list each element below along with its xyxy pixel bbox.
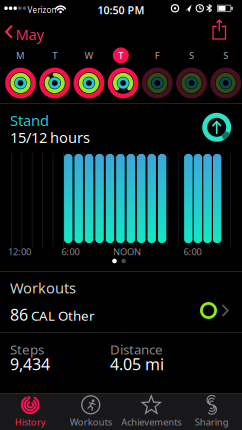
button[interactable]: Day W <box>72 47 106 99</box>
staticText: Distance <box>110 340 163 358</box>
staticText: Verizon <box>27 5 56 15</box>
staticText: 6:00 <box>61 245 79 258</box>
staticText: 15/12 <box>10 127 47 147</box>
staticText: T <box>118 49 123 62</box>
staticText: Workouts <box>70 416 112 428</box>
staticText: Steps <box>10 340 44 358</box>
staticText: Sharing <box>195 416 229 428</box>
staticText: Workouts <box>10 278 76 297</box>
staticText: S <box>223 49 228 62</box>
button[interactable]: Achievements <box>121 393 181 430</box>
button[interactable]: History <box>0 393 60 430</box>
staticText: 6:00 <box>183 245 201 258</box>
staticText: F <box>155 49 160 62</box>
button[interactable]: Back <box>3 20 49 44</box>
button[interactable]: Sharing <box>181 393 242 430</box>
staticText: Achievements <box>121 416 181 428</box>
button[interactable]: Workouts <box>60 393 121 430</box>
staticText: Stand <box>10 110 49 130</box>
button[interactable]: Day T <box>104 47 138 99</box>
button[interactable]: Share <box>206 18 232 42</box>
staticText: W <box>84 49 93 62</box>
staticText: 4.05 mi <box>110 353 164 375</box>
staticText: hours <box>50 127 90 147</box>
button[interactable]: 86 <box>0 292 242 332</box>
staticText: May <box>15 24 43 44</box>
staticText: 10:50 PM <box>97 3 144 17</box>
staticText: History <box>15 416 46 428</box>
staticText: S <box>189 49 194 62</box>
staticText: NOON <box>113 245 141 258</box>
staticText: T <box>52 49 57 62</box>
staticText: 86 <box>10 304 28 325</box>
button[interactable]: Day M <box>3 47 37 99</box>
button[interactable]: Day T <box>38 47 72 99</box>
button[interactable]: Day S <box>209 47 242 99</box>
staticText: 12:00 <box>8 245 31 258</box>
button[interactable]: Day F <box>140 47 174 99</box>
staticText: CAL Other <box>31 307 95 324</box>
staticText: 9,434 <box>10 353 50 375</box>
button[interactable]: Scroll to top <box>202 113 231 142</box>
button[interactable]: Day S <box>174 47 208 99</box>
staticText: M <box>16 49 25 62</box>
